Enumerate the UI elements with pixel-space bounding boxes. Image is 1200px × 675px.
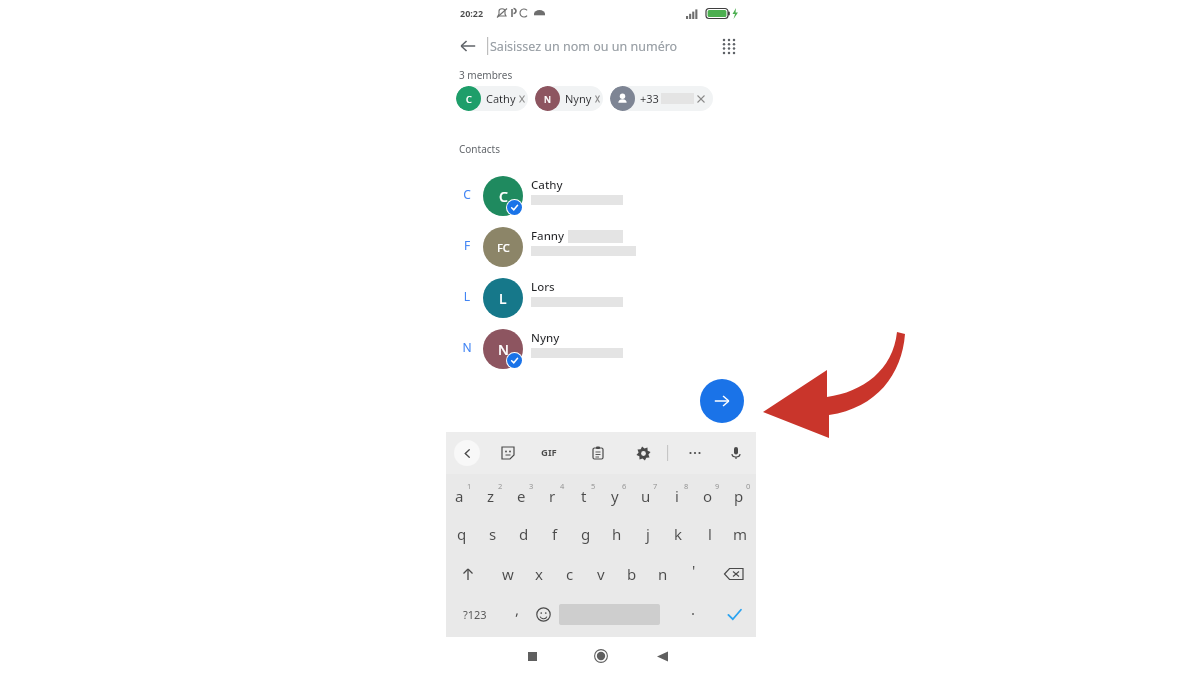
staticText: 20:22 [460,7,484,19]
staticText: N [498,340,509,359]
button[interactable]: N [446,321,756,372]
button[interactable]: +33 [610,86,713,111]
staticText: e [517,486,526,506]
staticText: c [566,564,574,584]
button[interactable]: Clipboard [587,442,609,464]
staticText: t [581,486,587,506]
staticText: p [734,486,744,506]
staticText: d [519,524,529,544]
staticText: C [499,187,508,206]
button[interactable]: Emoji [528,594,558,634]
staticText: L [460,288,474,304]
staticText: m [733,524,748,544]
button[interactable]: Dial pad [714,31,744,61]
button[interactable]: . [680,594,706,634]
button[interactable]: p [725,474,756,514]
staticText: 3 membres [459,68,513,82]
staticText: ' [692,560,696,580]
button[interactable]: k [663,514,694,554]
button[interactable]: Back [652,646,672,666]
staticText: y [611,486,619,506]
staticText: a [455,486,464,506]
staticText: 8 [684,481,689,491]
button[interactable]: Shift [450,554,486,594]
button[interactable]: u [632,474,663,514]
staticText: N [460,339,474,355]
button[interactable]: a [446,474,477,514]
button[interactable]: ?123 [452,594,498,634]
button[interactable]: q [446,514,477,554]
button[interactable]: N [535,86,603,111]
button[interactable]: g [570,514,601,554]
button[interactable]: d [508,514,539,554]
button[interactable]: Recents [522,646,542,666]
button[interactable]: w [492,554,523,594]
button[interactable]: x [523,554,554,594]
staticText: Cathy [486,91,516,106]
staticText: k [674,524,683,544]
staticText: n [658,564,668,584]
staticText: , [515,599,520,619]
button[interactable]: GIF [541,446,557,459]
button[interactable]: Collapse toolbar [454,440,480,466]
staticText: z [487,486,495,506]
button[interactable]: Keyboard settings [632,442,654,464]
button[interactable]: t [570,474,601,514]
staticText: Saisissez un nom ou un numéro [490,38,678,55]
button[interactable]: , [502,594,532,634]
button[interactable]: Next [700,379,744,423]
button[interactable]: r [539,474,570,514]
button[interactable]: v [585,554,616,594]
staticText: o [703,486,713,506]
button[interactable]: Home [591,646,611,666]
staticText: j [646,524,650,544]
button[interactable]: i [663,474,694,514]
button[interactable]: b [616,554,647,594]
staticText: 1 [467,481,472,491]
staticText: u [641,486,651,506]
button[interactable]: f [539,514,570,554]
staticText: Fanny [531,228,568,244]
button[interactable]: F [446,219,756,270]
button[interactable]: Backspace [712,554,756,594]
button[interactable]: Back [454,32,482,60]
staticText: i [675,486,679,506]
button[interactable]: C [446,168,756,219]
staticText: l [708,524,712,544]
button[interactable]: h [601,514,632,554]
staticText: N [544,93,551,105]
button[interactable]: C [456,86,528,111]
staticText: w [502,564,514,584]
button[interactable]: j [632,514,663,554]
staticText: +33 [640,91,659,106]
staticText: g [581,524,591,544]
button[interactable]: m [725,514,756,554]
staticText: b [627,564,637,584]
button[interactable]: ' [678,554,709,594]
button[interactable]: e [508,474,539,514]
staticText: Cathy [531,177,563,193]
staticText: h [612,524,622,544]
staticText: ?123 [463,607,487,622]
staticText: v [597,564,605,584]
button[interactable]: L [446,270,756,321]
button[interactable]: s [477,514,508,554]
staticText: 9 [715,481,720,491]
staticText: Nyny [531,330,560,346]
button[interactable]: More options [684,442,706,464]
button[interactable]: z [477,474,508,514]
staticText: 4 [560,481,565,491]
button[interactable]: l [694,514,725,554]
staticText: . [691,599,696,619]
button[interactable]: n [647,554,678,594]
staticText: s [489,524,497,544]
button[interactable]: Done [712,594,756,634]
button[interactable]: o [694,474,725,514]
staticText: 3 [529,481,534,491]
button[interactable]: y [601,474,632,514]
staticText: r [549,486,556,506]
button[interactable]: Stickers [497,442,519,464]
button[interactable]: Voice input [725,442,747,464]
button[interactable]: c [554,554,585,594]
